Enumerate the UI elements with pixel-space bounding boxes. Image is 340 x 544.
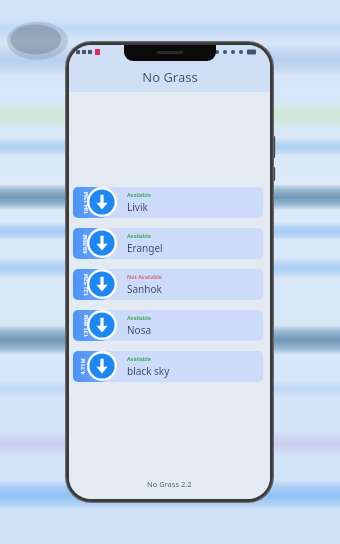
staticText: No Grass [142, 68, 198, 86]
button[interactable]: 184.15M [69, 184, 270, 220]
staticText: 122.52M [82, 273, 89, 296]
button[interactable]: 4.11M [69, 348, 270, 384]
staticText: Sanhok [127, 282, 162, 296]
button[interactable]: 69.00M [69, 225, 270, 261]
staticText: 184.15M [82, 191, 89, 214]
button[interactable]: Download Nosa [87, 310, 117, 340]
staticText: 131.86M [82, 314, 89, 337]
button[interactable]: 131.86M [69, 307, 270, 343]
staticText: 69.00M [80, 233, 87, 253]
staticText: Nosa [127, 323, 152, 337]
staticText: Not Available [127, 273, 162, 280]
button[interactable]: Download black sky [87, 351, 117, 381]
button[interactable]: Download Livik [87, 187, 117, 217]
staticText: Available [127, 191, 151, 198]
staticText: 4.11M [78, 358, 85, 374]
staticText: No Grass 2.2 [147, 479, 192, 489]
staticText: Erangel [127, 241, 163, 255]
button[interactable]: Download Sanhok [87, 269, 117, 299]
staticText: Livik [127, 200, 148, 214]
staticText: Available [127, 232, 151, 239]
button[interactable]: 122.52M [69, 266, 270, 302]
button[interactable]: Download Erangel [87, 228, 117, 258]
staticText: Available [127, 314, 151, 321]
staticText: black sky [127, 364, 170, 378]
staticText: Available [127, 355, 151, 362]
